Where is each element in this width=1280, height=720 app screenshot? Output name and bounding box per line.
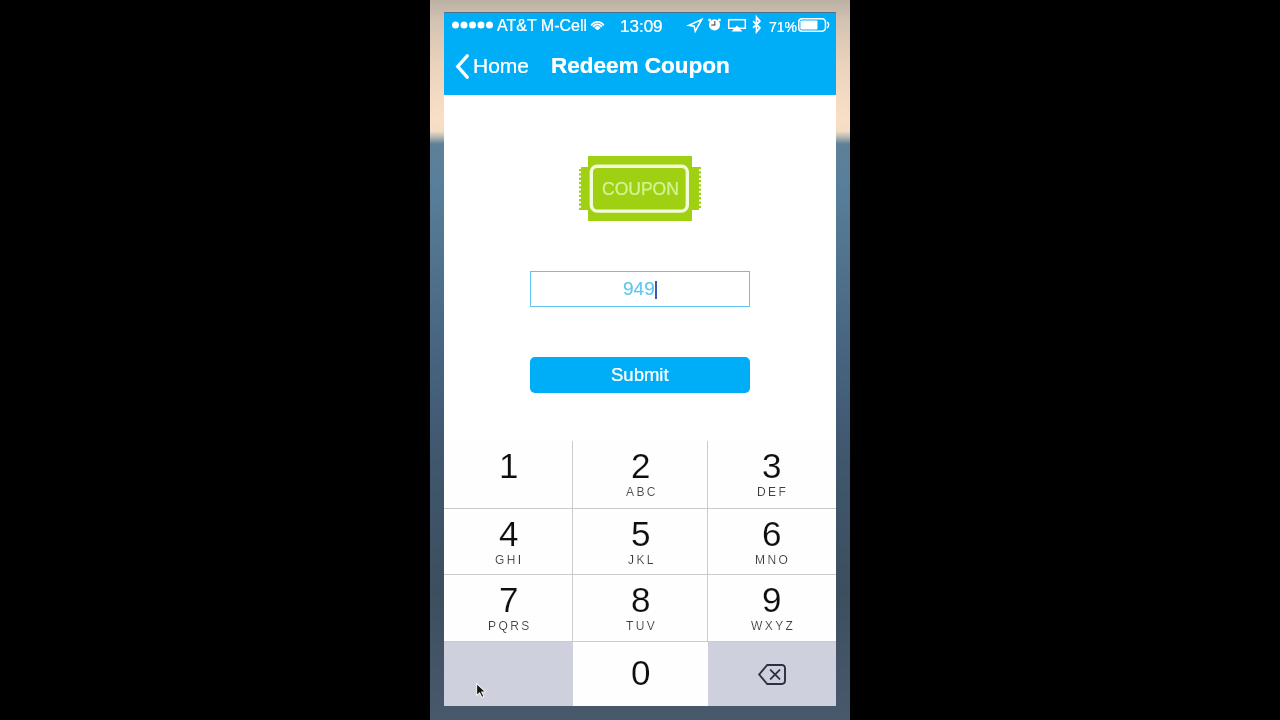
staticText: 13:09 <box>620 17 663 36</box>
staticText: 9 <box>762 580 782 619</box>
staticText: GHI <box>495 553 524 566</box>
button[interactable]: 5 <box>573 509 708 574</box>
staticText: WXYZ <box>751 619 796 632</box>
staticText: Submit <box>611 364 669 385</box>
staticText: 5 <box>631 514 651 553</box>
staticText: Home <box>473 54 530 77</box>
button[interactable]: 7 <box>444 575 573 641</box>
staticText: JKL <box>628 553 656 566</box>
button[interactable]: Submit <box>530 357 750 393</box>
staticText: Redeem Coupon <box>551 53 730 78</box>
staticText: 4 <box>499 514 519 553</box>
staticText: DEF <box>757 485 789 498</box>
button[interactable]: Home <box>452 54 530 79</box>
staticText: 1 <box>499 446 519 485</box>
button[interactable]: 1 <box>444 441 573 508</box>
staticText: 7 <box>499 580 519 619</box>
button[interactable]: 949 <box>530 271 750 307</box>
button[interactable]: 0 <box>573 642 708 706</box>
staticText: 3 <box>762 446 782 485</box>
staticText: MNO <box>755 553 791 566</box>
staticText: 0 <box>631 653 651 692</box>
button[interactable]: 2 <box>573 441 708 508</box>
button[interactable] <box>444 642 573 706</box>
button[interactable]: 4 <box>444 509 573 574</box>
staticText: COUPON <box>602 179 679 199</box>
button[interactable]: 8 <box>573 575 708 641</box>
button[interactable]: 6 <box>708 509 836 574</box>
staticText: 6 <box>762 514 782 553</box>
button[interactable]: 3 <box>708 441 836 508</box>
staticText: PQRS <box>488 619 532 632</box>
button[interactable]: 9 <box>708 575 836 641</box>
staticText: 949 <box>623 278 655 299</box>
staticText: 71% <box>769 19 798 35</box>
staticText: 8 <box>631 580 651 619</box>
staticText: ABC <box>626 485 658 498</box>
button[interactable]: Delete <box>708 642 836 706</box>
staticText: 2 <box>631 446 651 485</box>
staticText: TUV <box>626 619 658 632</box>
staticText: AT&T M-Cell <box>497 17 588 35</box>
